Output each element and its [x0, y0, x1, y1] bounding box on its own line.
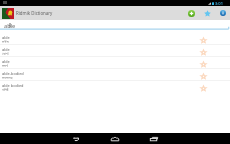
button[interactable]: Add to favorites	[196, 34, 211, 46]
staticText: able bodied	[2, 83, 24, 88]
button[interactable]: Back	[66, 133, 85, 144]
button[interactable]: able-bodied	[0, 69, 230, 81]
button[interactable]: About	[216, 6, 229, 20]
button[interactable]: Add to favorites	[196, 46, 211, 58]
staticText: able	[2, 35, 10, 40]
staticText: যোগ্য	[2, 52, 9, 56]
button[interactable]: able	[0, 45, 230, 57]
staticText: 3:01	[215, 1, 223, 6]
staticText: able	[2, 59, 10, 64]
button[interactable]: Add to favorites	[196, 82, 211, 94]
button[interactable]: Add to favorites	[196, 58, 211, 70]
button[interactable]: able bodied	[0, 81, 230, 93]
staticText: সমর্থ	[2, 64, 8, 68]
button[interactable]: able	[0, 33, 230, 45]
button[interactable]: able	[0, 57, 230, 69]
staticText: সক্ষম	[2, 40, 9, 44]
button[interactable]: Home	[105, 133, 124, 144]
staticText: সবলদেহ	[2, 76, 13, 80]
button[interactable]: Recent apps	[144, 133, 163, 144]
button[interactable]: Add to favorites	[196, 70, 211, 82]
staticText: able-bodied	[2, 71, 24, 76]
button[interactable]: able	[0, 20, 230, 30]
staticText: Ridmik Dictionary	[16, 10, 53, 16]
staticText: able	[4, 22, 16, 30]
button[interactable]: Favorites	[201, 6, 214, 20]
staticText: able	[2, 47, 10, 52]
staticText: বলিষ্ঠ	[2, 88, 9, 92]
button[interactable]: Add word	[185, 6, 198, 20]
